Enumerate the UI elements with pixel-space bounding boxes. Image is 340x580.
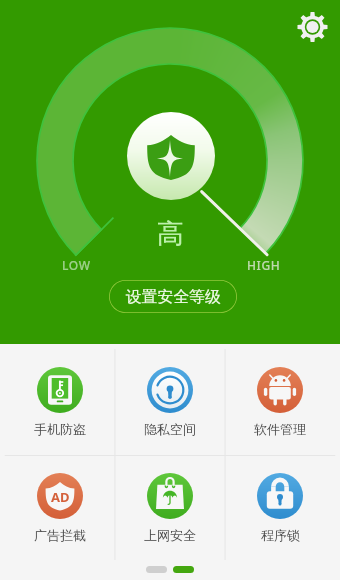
staticText: 广告拦截 [34,527,86,543]
staticText: 高 [157,217,184,251]
staticText: AD [51,488,70,506]
button[interactable]: Settings [294,9,331,46]
button[interactable]: 上网安全 [115,450,225,558]
staticText: 上网安全 [144,527,196,543]
staticText: HIGH [247,257,281,273]
button[interactable]: 手机防盗 [5,344,115,450]
staticText: 软件管理 [254,421,306,437]
staticText: 手机防盗 [34,421,86,437]
button[interactable]: 软件管理 [225,344,335,450]
staticText: 程序锁 [261,527,300,543]
button[interactable]: 隐私空间 [115,344,225,450]
button[interactable]: AD [5,450,115,558]
button[interactable]: 程序锁 [225,450,335,558]
button[interactable]: 设置安全等级 [109,280,237,313]
staticText: 隐私空间 [144,421,196,437]
staticText: 设置安全等级 [126,287,221,307]
staticText: LOW [62,257,91,273]
